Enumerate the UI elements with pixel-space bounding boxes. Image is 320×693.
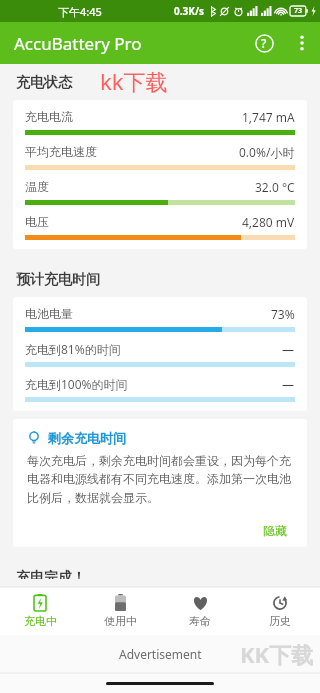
staticText: 寿命 (189, 614, 211, 628)
button[interactable]: 充电到81%的时间 (25, 341, 295, 367)
staticText: 充电完成！ (16, 569, 86, 579)
button[interactable]: More options (284, 25, 320, 61)
staticText: 下午4:45 (58, 4, 102, 19)
staticText: 0.0%/小时 (239, 144, 295, 160)
staticText: ? (261, 35, 267, 51)
button[interactable]: 历史 (240, 587, 320, 635)
staticText: — (282, 341, 295, 357)
button[interactable]: 充电电流 (25, 109, 295, 135)
staticText: 预计充电时间 (16, 271, 100, 289)
button[interactable]: 充电到100%的时间 (25, 376, 295, 402)
staticText: 73% (271, 306, 295, 322)
button[interactable]: 电池电量 (25, 306, 295, 332)
staticText: 充电中 (24, 614, 57, 628)
staticText: 充电到81%的时间 (25, 341, 121, 357)
staticText: 32.0 °C (255, 179, 295, 195)
button[interactable]: 使用中 (80, 587, 160, 635)
staticText: 73 (294, 6, 303, 16)
button[interactable]: 电压 (25, 214, 295, 240)
button[interactable]: 隐藏 (255, 520, 295, 541)
staticText: kk下载 (100, 66, 168, 96)
staticText: 充电到100%的时间 (25, 376, 128, 392)
staticText: 历史 (269, 614, 291, 628)
staticText: 电池电量 (25, 306, 73, 321)
button[interactable]: 平均充电速度 (25, 144, 295, 170)
staticText: AccuBattery Pro (14, 32, 142, 55)
staticText: 4,280 mV (242, 214, 295, 230)
staticText: 每次充电后，剩余充电时间都会重设，因为每个充电器和电源线都有不同充电速度。添加第… (27, 453, 295, 506)
staticText: 电压 (25, 214, 49, 229)
staticText: KK下载 (240, 639, 314, 669)
staticText: 1,747 mA (242, 109, 295, 125)
staticText: 充电状态 (16, 74, 72, 92)
staticText: Advertisement (119, 646, 202, 662)
button[interactable]: 寿命 (160, 587, 240, 635)
staticText: 平均充电速度 (25, 144, 97, 159)
staticText: 充电电流 (25, 109, 73, 124)
staticText: 隐藏 (263, 523, 287, 538)
staticText: 温度 (25, 179, 49, 194)
button[interactable]: 充电中 (0, 587, 80, 635)
staticText: — (282, 376, 295, 392)
staticText: 剩余充电时间 (48, 430, 126, 446)
button[interactable]: Help (244, 23, 284, 63)
button[interactable]: 温度 (25, 179, 295, 205)
staticText: 使用中 (104, 614, 137, 628)
staticText: 0.3K/s (174, 4, 205, 18)
